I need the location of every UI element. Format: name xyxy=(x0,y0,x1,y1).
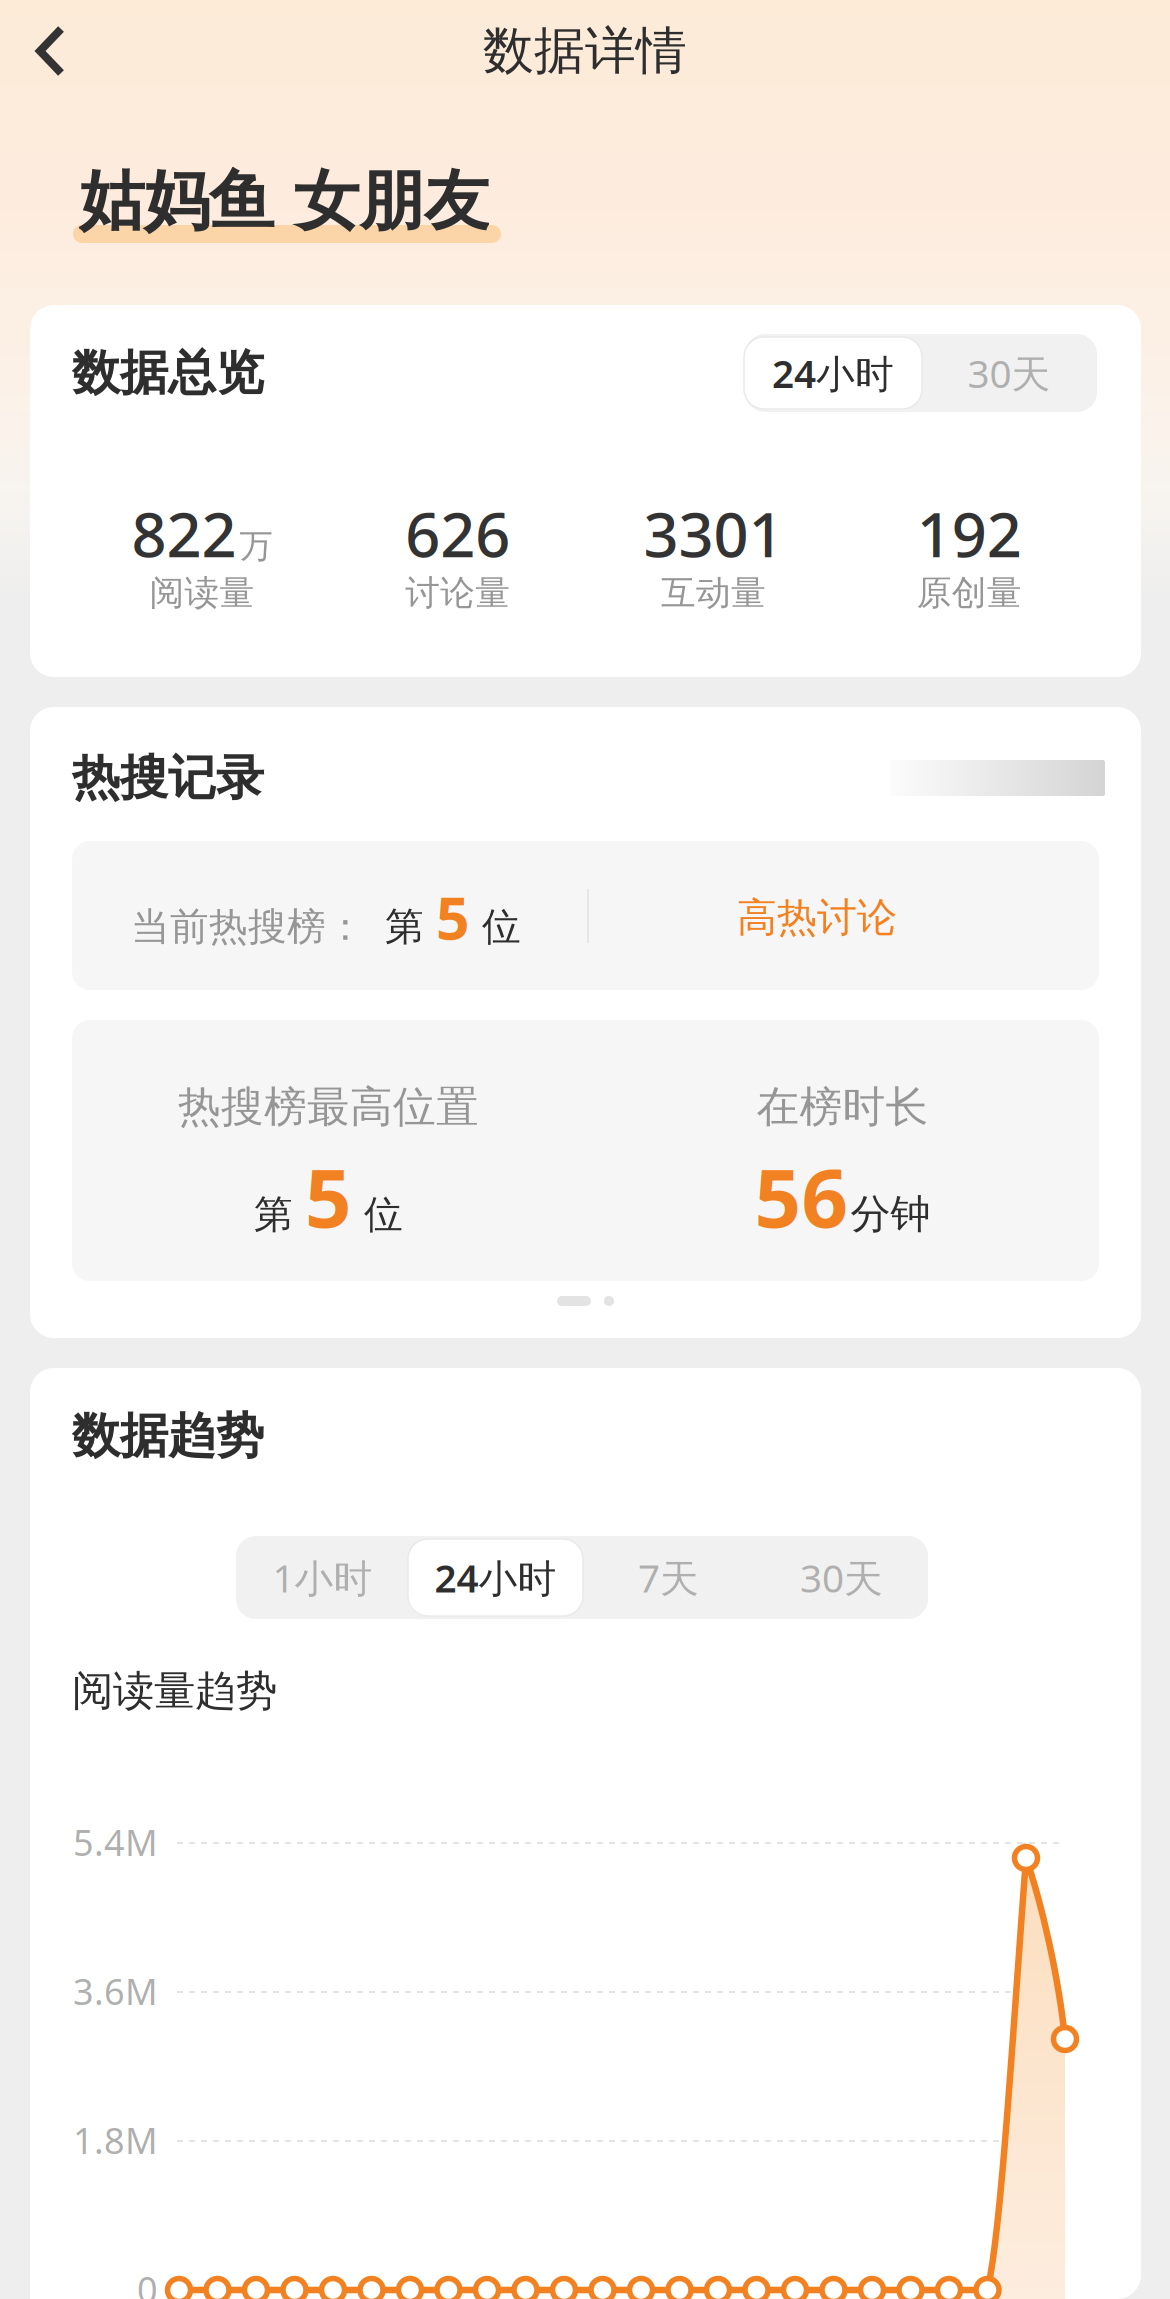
staticText: 192 xyxy=(917,493,1022,574)
button[interactable]: 30天 xyxy=(921,334,1097,412)
staticText: 当前热搜榜： xyxy=(131,903,365,951)
staticText: 30天 xyxy=(800,1552,883,1603)
staticText: 1.8M xyxy=(73,2116,158,2164)
staticText: 热搜记录 xyxy=(72,748,264,807)
button[interactable]: 30天 xyxy=(755,1536,928,1619)
staticText: 30天 xyxy=(967,347,1050,399)
button[interactable]: 1小时 xyxy=(236,1536,409,1619)
button[interactable]: 7天 xyxy=(582,1536,755,1619)
button[interactable]: 返回 xyxy=(0,0,107,102)
staticText: 24小时 xyxy=(434,1552,556,1603)
staticText: 讨论量 xyxy=(405,572,510,614)
staticText: 5 xyxy=(436,878,470,956)
staticText: 互动量 xyxy=(661,572,766,614)
staticText: 数据总览 xyxy=(72,343,264,402)
staticText: 626 xyxy=(405,493,510,574)
staticText: 5 xyxy=(305,1142,352,1250)
staticText: 7天 xyxy=(638,1552,699,1603)
staticText: 位 xyxy=(352,1191,403,1238)
staticText: 0 xyxy=(137,2265,158,2299)
staticText: 在榜时长 xyxy=(756,1081,928,1133)
staticText: 3.6M xyxy=(73,1967,158,2015)
staticText: 高热讨论 xyxy=(737,893,897,942)
staticText: 56 xyxy=(754,1142,848,1250)
staticText: 姑妈鱼 女朋友 xyxy=(79,161,489,241)
staticText: 数据趋势 xyxy=(72,1406,264,1465)
staticText: 1小时 xyxy=(272,1552,372,1603)
staticText: 阅读量 xyxy=(149,572,254,614)
staticText: 第 xyxy=(385,903,436,951)
staticText: 822 xyxy=(131,493,236,574)
staticText: 阅读量趋势 xyxy=(72,1666,277,1716)
staticText: 万 xyxy=(239,526,272,567)
staticText: 分钟 xyxy=(850,1190,930,1239)
staticText: 数据详情 xyxy=(483,20,687,82)
staticText: 24小时 xyxy=(772,347,894,399)
staticText: 5.4M xyxy=(73,1818,158,1866)
staticText: 位 xyxy=(470,903,521,951)
staticText: 热搜榜最高位置 xyxy=(178,1081,479,1133)
staticText: 第 xyxy=(254,1191,305,1238)
button[interactable]: 24小时 xyxy=(409,1536,582,1619)
staticText: 3301 xyxy=(643,493,783,574)
staticText: 原创量 xyxy=(917,572,1022,614)
button[interactable]: 24小时 xyxy=(745,334,921,412)
